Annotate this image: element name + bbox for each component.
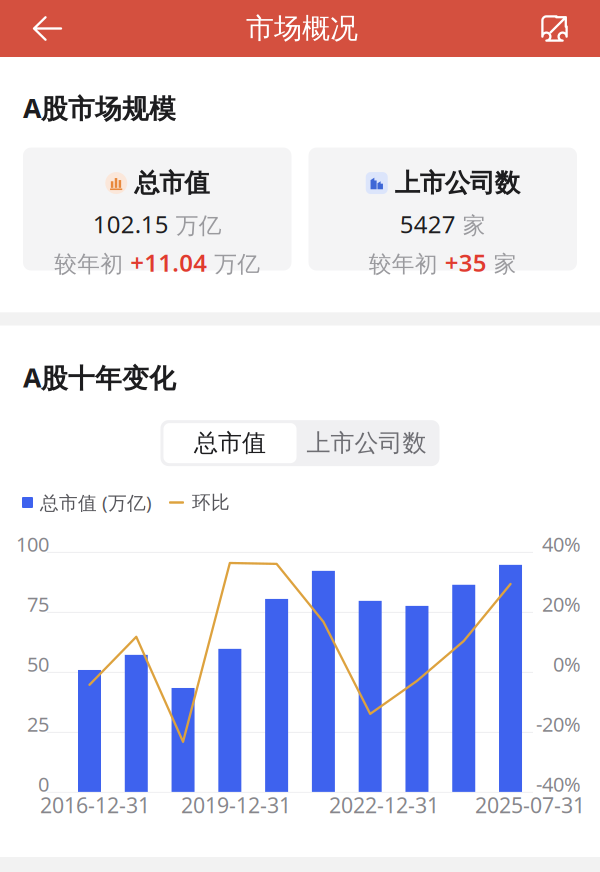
staticText: 2022-12-31: [329, 791, 439, 819]
staticText: -20%: [536, 711, 581, 737]
button[interactable]: Share: [525, 1, 600, 56]
staticText: 5427: [400, 208, 456, 240]
button[interactable]: 上市公司数: [308, 148, 577, 271]
staticText: 2016-12-31: [40, 791, 150, 819]
staticText: 家: [463, 212, 486, 240]
staticText: 25: [27, 711, 49, 737]
staticText: 较年初: [54, 250, 123, 278]
staticText: 总市值 (万亿): [40, 490, 152, 515]
staticText: 上市公司数: [306, 428, 426, 458]
staticText: 2025-07-31: [475, 791, 585, 819]
staticText: 万亿: [176, 212, 222, 240]
staticText: -40%: [536, 771, 581, 797]
staticText: 50: [27, 651, 49, 677]
staticText: A股市场规模: [23, 90, 176, 126]
staticText: 总市值: [134, 167, 209, 199]
staticText: A股十年变化: [23, 360, 176, 395]
staticText: +11.04: [130, 247, 207, 278]
staticText: 较年初: [369, 250, 438, 278]
staticText: 40%: [542, 531, 581, 557]
staticText: 市场概况: [246, 11, 358, 46]
staticText: 家: [494, 250, 517, 278]
staticText: 万亿: [214, 250, 260, 278]
staticText: 100: [16, 531, 49, 557]
staticText: 2019-12-31: [181, 791, 291, 819]
button[interactable]: 总市值: [163, 423, 296, 463]
staticText: 0: [38, 771, 49, 797]
button[interactable]: 总市值: [23, 148, 291, 271]
staticText: +35: [445, 247, 487, 278]
staticText: 环比: [192, 491, 230, 514]
staticText: 75: [27, 591, 49, 617]
staticText: 总市值: [194, 428, 266, 458]
staticText: 上市公司数: [395, 167, 520, 199]
button[interactable]: Back: [0, 1, 79, 55]
button[interactable]: 上市公司数: [296, 423, 436, 463]
staticText: 20%: [542, 591, 581, 617]
staticText: 0%: [553, 651, 581, 677]
staticText: 102.15: [93, 208, 169, 240]
